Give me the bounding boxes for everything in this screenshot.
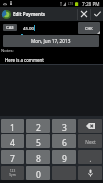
button[interactable]: 0 bbox=[26, 166, 50, 180]
staticText: Here is a comment bbox=[5, 57, 44, 63]
button[interactable]: 2 bbox=[26, 119, 50, 133]
staticText: 1 bbox=[10, 122, 15, 133]
button[interactable]: 6 bbox=[52, 134, 76, 148]
button[interactable]: CA$ bbox=[3, 24, 17, 31]
staticText: 5 bbox=[36, 137, 41, 148]
button[interactable]: 4 bbox=[1, 134, 24, 148]
button[interactable]: Save bbox=[91, 7, 103, 21]
button[interactable]: Backspace bbox=[78, 119, 102, 133]
button[interactable]: CHK bbox=[78, 22, 100, 34]
button[interactable]: Mon, Jun 17, 2013 bbox=[3, 35, 99, 47]
staticText: 2 bbox=[36, 122, 41, 133]
staticText: LTE bbox=[68, 2, 74, 6]
staticText: 3 bbox=[62, 122, 67, 133]
button[interactable]: 1 bbox=[1, 119, 24, 133]
staticText: 9 bbox=[62, 153, 67, 164]
staticText: CHK bbox=[85, 26, 93, 31]
staticText: Edit Payments bbox=[13, 11, 46, 17]
staticText: CA$ bbox=[6, 25, 14, 31]
staticText: 123 Sym bbox=[9, 169, 16, 177]
staticText: 6 bbox=[62, 137, 67, 148]
button[interactable]: Cancel bbox=[78, 7, 90, 21]
button[interactable]: 3 bbox=[52, 119, 76, 133]
button[interactable]: 9 bbox=[52, 150, 76, 164]
button[interactable]: Next bbox=[78, 134, 102, 148]
button[interactable]: 123 Sym bbox=[1, 166, 24, 180]
staticText: 7:28 PM bbox=[82, 1, 100, 7]
button[interactable]: Voice input bbox=[78, 166, 102, 180]
button[interactable]: 8 bbox=[26, 150, 50, 164]
staticText: 8 bbox=[36, 153, 41, 164]
staticText: 7 bbox=[10, 153, 15, 164]
staticText: 45.00 bbox=[23, 25, 34, 31]
staticText: 0 bbox=[36, 169, 41, 180]
button[interactable]: App icon bbox=[1, 9, 12, 20]
staticText: Next bbox=[85, 139, 96, 145]
staticText: Notes: bbox=[1, 48, 14, 54]
button[interactable]: . bbox=[78, 150, 102, 164]
button[interactable]: 7 bbox=[1, 150, 24, 164]
staticText: 4 bbox=[10, 137, 15, 148]
staticText: . bbox=[89, 153, 92, 164]
staticText: Mon, Jun 17, 2013 bbox=[31, 38, 71, 44]
button[interactable]: 5 bbox=[26, 134, 50, 148]
